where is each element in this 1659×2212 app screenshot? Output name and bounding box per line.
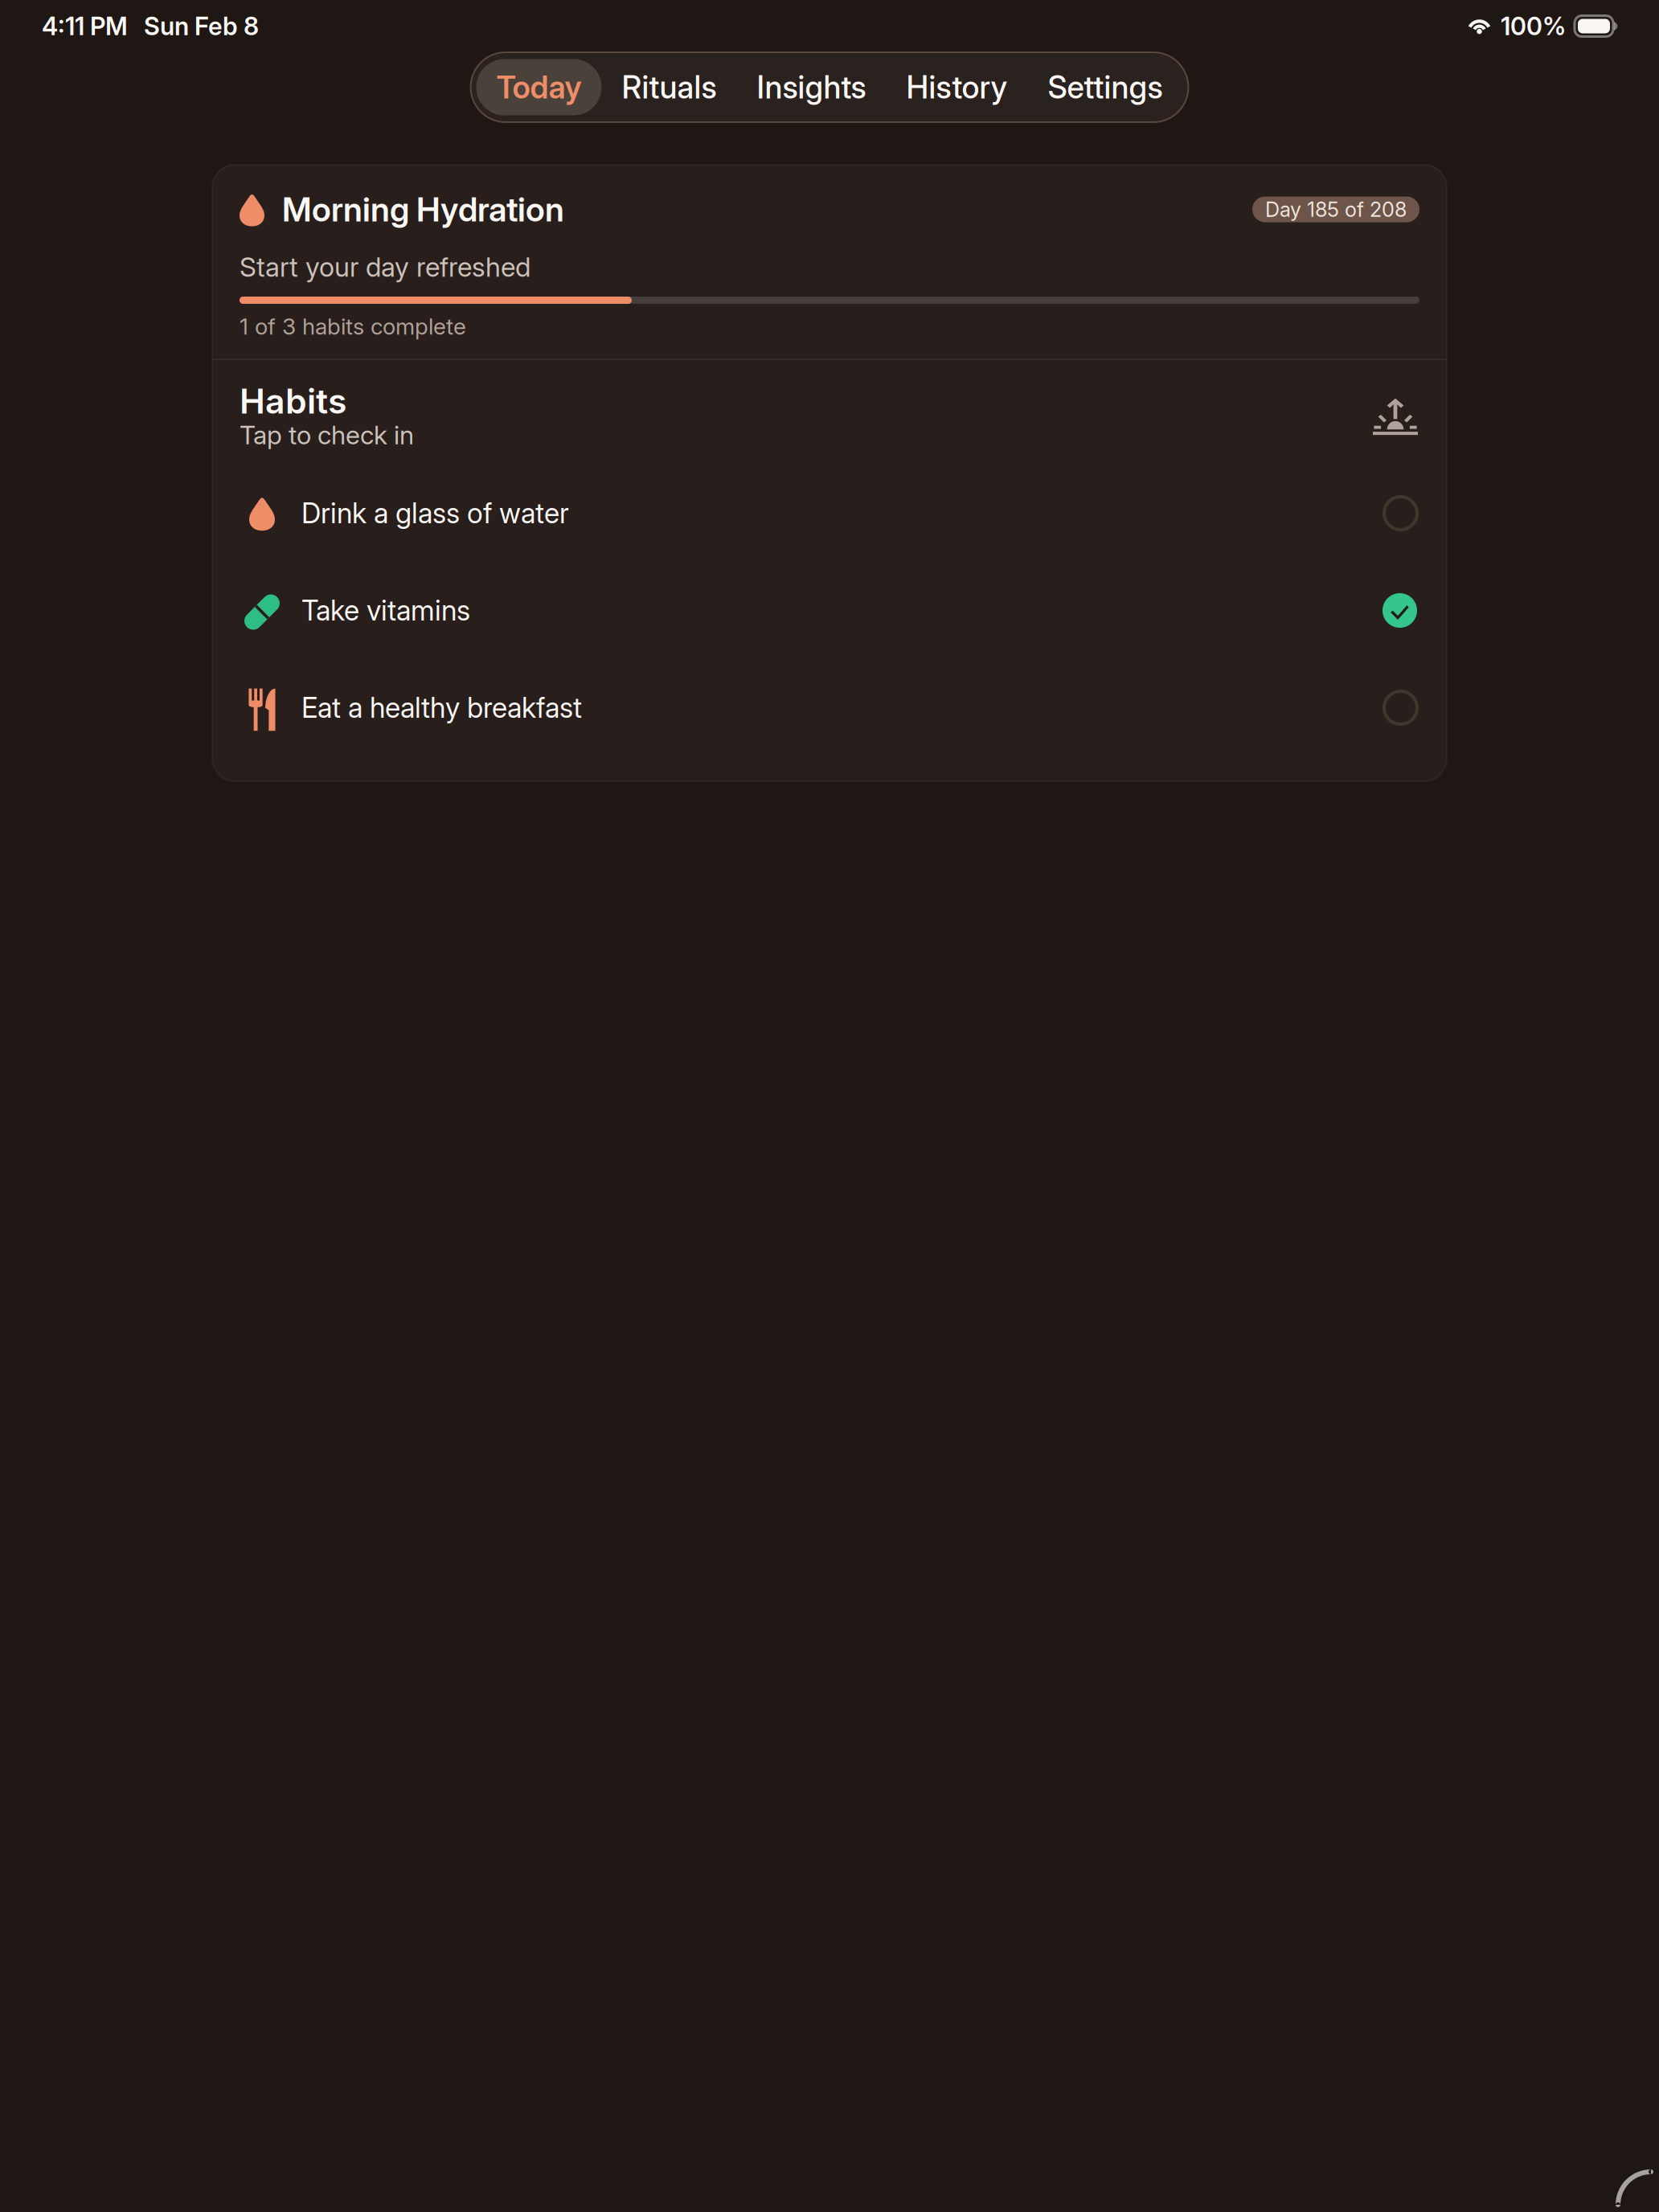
button[interactable]: Eat a healthy breakfast: [212, 659, 1447, 756]
staticText: Day 185 of 208: [1265, 197, 1407, 222]
staticText: Settings: [1048, 68, 1163, 106]
button[interactable]: Drink a glass of water: [212, 465, 1447, 562]
staticText: 100%: [1501, 11, 1566, 41]
button[interactable]: Today: [476, 59, 602, 115]
staticText: History: [906, 68, 1008, 106]
button[interactable]: Settings: [1028, 59, 1183, 115]
staticText: Start your day refreshed: [240, 251, 530, 283]
button[interactable]: Insights: [737, 59, 886, 115]
staticText: Morning Hydration: [282, 189, 564, 229]
staticText: 1 of 3 habits complete: [240, 313, 466, 340]
button[interactable]: History: [886, 59, 1028, 115]
staticText: 4:11 PM: [42, 11, 128, 41]
staticText: Tap to check in: [240, 419, 414, 450]
staticText: Eat a healthy breakfast: [301, 691, 582, 725]
button[interactable]: Rituals: [602, 59, 737, 115]
button[interactable]: Take vitamins: [212, 562, 1447, 659]
staticText: Take vitamins: [301, 594, 470, 627]
staticText: Today: [496, 68, 582, 106]
staticText: Sun Feb 8: [144, 11, 259, 41]
staticText: Drink a glass of water: [301, 496, 569, 530]
staticText: Rituals: [622, 68, 717, 106]
staticText: Habits: [240, 380, 346, 422]
staticText: Insights: [757, 68, 866, 106]
